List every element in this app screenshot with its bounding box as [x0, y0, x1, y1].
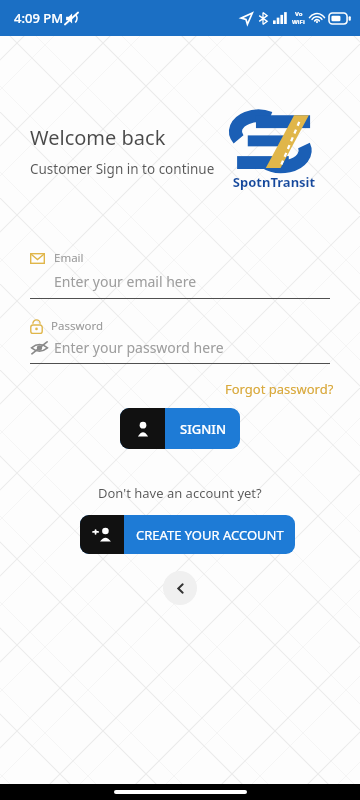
staticText: Don't have an account yet? — [98, 484, 262, 502]
staticText: Password — [51, 318, 104, 334]
staticText: Email — [54, 250, 84, 266]
button[interactable]: SIGNIN — [120, 408, 240, 449]
staticText: Vo — [295, 10, 303, 18]
button[interactable]: CREATE YOUR ACCOUNT — [80, 515, 295, 554]
staticText: Customer Sign in to continue — [30, 160, 215, 178]
button[interactable]: Back — [163, 571, 197, 605]
staticText: 4:09 PM — [14, 9, 64, 27]
staticText: SpotnTransit — [231, 173, 317, 191]
staticText: SIGNIN — [180, 420, 226, 438]
staticText: CREATE YOUR ACCOUNT — [136, 526, 284, 544]
button[interactable]: Forgot password? — [221, 376, 338, 402]
staticText: Forgot password? — [225, 380, 334, 398]
staticText: Enter your email here — [54, 272, 197, 291]
staticText: Enter your password here — [54, 338, 224, 357]
button[interactable]: Show password — [30, 340, 49, 355]
staticText: Welcome back — [30, 124, 166, 151]
staticText: WiFi — [292, 18, 305, 26]
